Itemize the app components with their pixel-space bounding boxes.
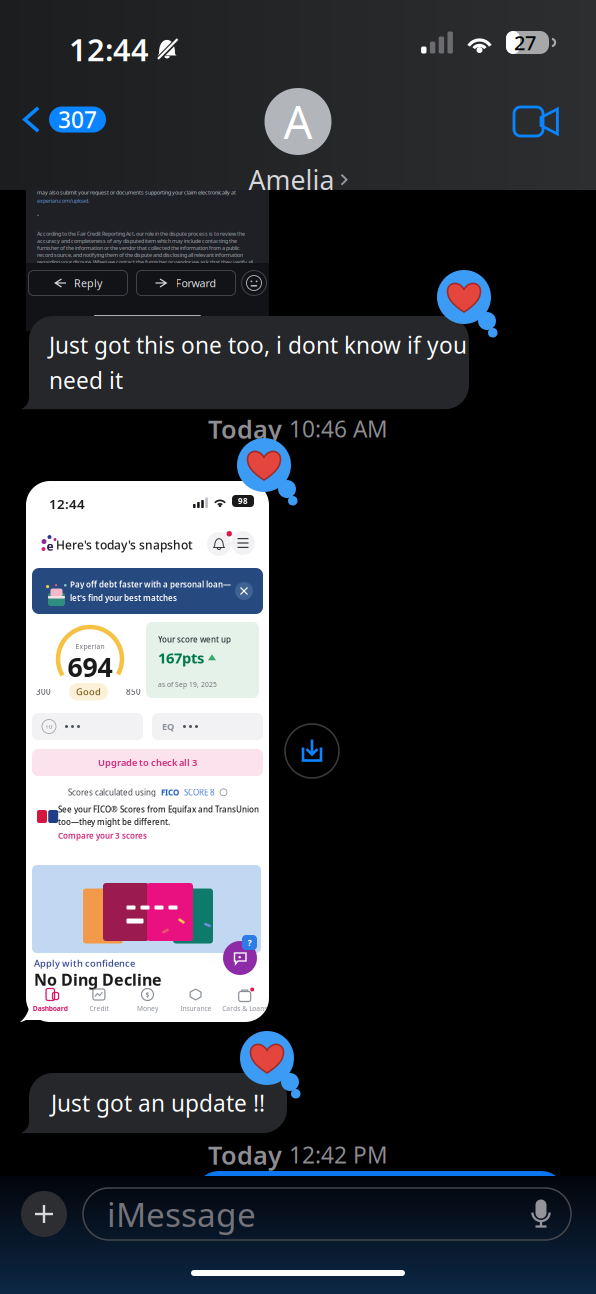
staticText: 12:44: [49, 495, 85, 513]
staticText: Amelia: [248, 162, 334, 197]
button[interactable]: A: [248, 88, 347, 197]
staticText: Forward: [175, 276, 216, 290]
staticText: Reply: [74, 276, 102, 290]
button[interactable]: FaceTime: [500, 93, 573, 150]
staticText: Insurance: [181, 1004, 212, 1013]
button[interactable]: 307: [13, 97, 116, 142]
staticText: Here's today's snapshot: [56, 537, 193, 553]
staticText: Experian: [75, 642, 104, 651]
staticText: let's find your best matches: [70, 593, 177, 603]
staticText: •: [37, 212, 39, 219]
staticText: 300: [36, 686, 51, 697]
staticText: 27: [514, 29, 536, 56]
staticText: SCORE 8: [184, 787, 215, 798]
staticText: 98: [238, 496, 248, 506]
staticText: ?: [247, 936, 251, 949]
staticText: Scores calculated using: [68, 787, 156, 798]
staticText: need it: [49, 365, 123, 395]
staticText: Upgrade to check all 3: [98, 756, 197, 769]
staticText: TU: [45, 723, 52, 730]
staticText: 10:46 AM: [289, 414, 388, 444]
staticText: Today: [208, 412, 282, 446]
staticText: e: [46, 538, 53, 554]
staticText: Good: [76, 685, 101, 698]
staticText: Cards & Loans: [222, 1004, 267, 1013]
staticText: Dashboard: [33, 1004, 68, 1013]
staticText: Compare your 3 scores: [58, 830, 147, 841]
staticText: 694: [67, 649, 112, 684]
staticText: 850: [126, 686, 141, 697]
staticText: A: [283, 91, 312, 152]
button[interactable]: Save attachment: [283, 722, 341, 780]
staticText: 307: [58, 104, 97, 134]
staticText: See your FICO® Scores from Equifax and T…: [58, 804, 259, 815]
staticText: may also submit your request or document…: [37, 189, 236, 196]
staticText: $: [145, 990, 149, 999]
staticText: Credit: [89, 1004, 108, 1013]
button[interactable]: Add attachment: [21, 1191, 67, 1237]
staticText: Pay off debt faster with a personal loan…: [70, 579, 231, 590]
staticText: iMessage: [107, 1192, 256, 1236]
staticText: Today: [208, 1138, 282, 1172]
staticText: Just got an update !!: [51, 1088, 265, 1118]
staticText: FICO: [161, 787, 179, 798]
staticText: 12:42 PM: [289, 1140, 388, 1170]
staticText: According to the Fair Credit Reporting A…: [37, 230, 253, 280]
staticText: as of Sep 19, 2025: [158, 680, 217, 689]
staticText: Apply with confidence: [34, 957, 135, 969]
staticText: Your score went up: [158, 634, 231, 645]
staticText: too—they might be different.: [58, 817, 170, 827]
staticText: Just got this one too, i dont know if yo…: [49, 330, 467, 360]
staticText: 12:44: [69, 29, 149, 70]
staticText: No Ding Decline: [34, 969, 162, 990]
staticText: EQ: [162, 720, 174, 733]
staticText: Money: [137, 1004, 158, 1013]
staticText: 167pts: [158, 648, 204, 667]
staticText: experian.com/upload.: [37, 197, 89, 204]
